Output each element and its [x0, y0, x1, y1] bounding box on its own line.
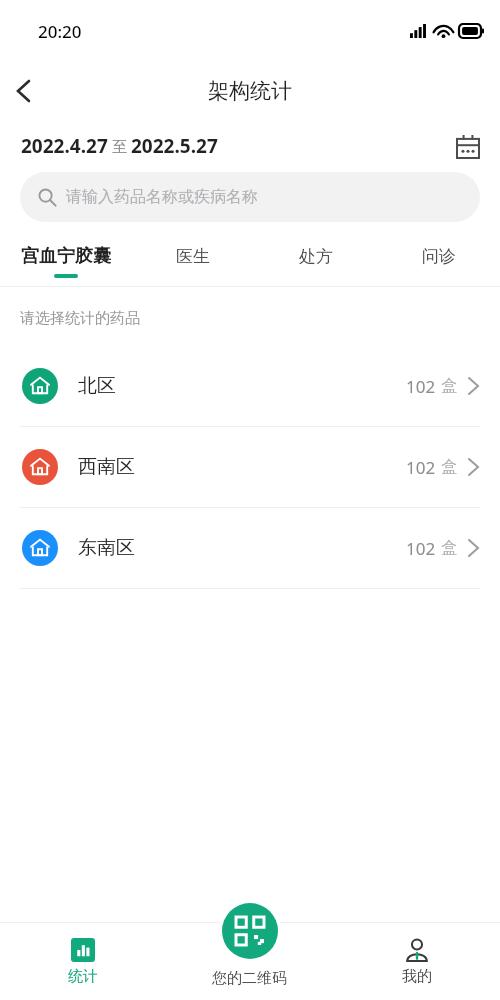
- staticText: 处方: [299, 246, 333, 267]
- button[interactable]: 2022.4.27: [21, 133, 218, 159]
- staticText: 盒: [441, 538, 457, 558]
- button[interactable]: 医生: [131, 236, 254, 286]
- staticText: 宫血宁胶囊: [21, 245, 111, 268]
- staticText: 102: [406, 456, 436, 479]
- button[interactable]: Pick date range: [450, 128, 486, 164]
- staticText: 2022.4.27: [21, 133, 108, 159]
- staticText: 至: [108, 136, 131, 156]
- staticText: 西南区: [78, 455, 135, 479]
- staticText: 我的: [402, 967, 432, 986]
- staticText: 2022.5.27: [131, 133, 218, 159]
- staticText: 20:20: [38, 20, 82, 43]
- button[interactable]: 问诊: [377, 236, 500, 286]
- button[interactable]: 西南区: [0, 427, 500, 507]
- button[interactable]: 宫血宁胶囊: [0, 236, 131, 286]
- button[interactable]: 您的二维码: [166, 923, 333, 1000]
- button[interactable]: Back: [0, 68, 46, 114]
- button[interactable]: 处方: [254, 236, 377, 286]
- button[interactable]: 我的: [333, 923, 500, 1000]
- button[interactable]: 请输入药品名称或疾病名称: [20, 172, 480, 222]
- staticText: 问诊: [422, 246, 456, 267]
- staticText: 东南区: [78, 536, 135, 560]
- staticText: 北区: [78, 374, 116, 398]
- staticText: 您的二维码: [212, 969, 287, 988]
- staticText: 请输入药品名称或疾病名称: [66, 187, 258, 207]
- button[interactable]: 北区: [0, 346, 500, 426]
- staticText: 架构统计: [208, 78, 292, 104]
- staticText: 盒: [441, 376, 457, 396]
- staticText: 102: [406, 375, 436, 398]
- staticText: 请选择统计的药品: [20, 309, 140, 328]
- button[interactable]: 统计: [0, 923, 166, 1000]
- staticText: 统计: [68, 967, 98, 986]
- staticText: 102: [406, 537, 436, 560]
- staticText: 医生: [176, 246, 210, 267]
- staticText: 盒: [441, 457, 457, 477]
- button[interactable]: 东南区: [0, 508, 500, 588]
- button[interactable]: Your QR code: [222, 903, 278, 959]
